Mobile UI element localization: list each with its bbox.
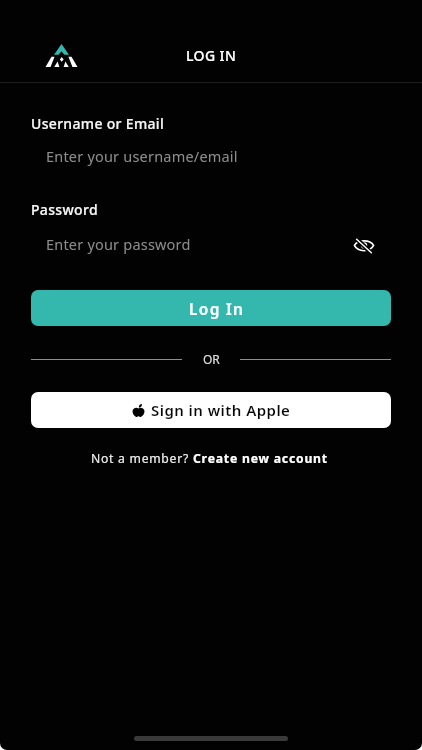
staticText: Not a member? [91, 450, 189, 467]
staticText: LOG IN [186, 46, 237, 65]
button[interactable]: Log In [31, 290, 391, 326]
staticText: Sign in with Apple [151, 400, 291, 420]
staticText: Enter your username/email [46, 146, 238, 166]
button[interactable]: Sign in with Apple [31, 392, 391, 428]
button[interactable]: Create new account [193, 450, 328, 467]
staticText: Password [31, 200, 98, 219]
staticText: Create new account [193, 450, 328, 467]
button[interactable]: Apex logo [45, 44, 78, 67]
button[interactable]: Show password [351, 233, 377, 259]
staticText: Enter your password [46, 234, 191, 254]
staticText: OR [203, 351, 220, 367]
staticText: Log In [189, 298, 245, 319]
staticText: Username or Email [31, 114, 164, 133]
